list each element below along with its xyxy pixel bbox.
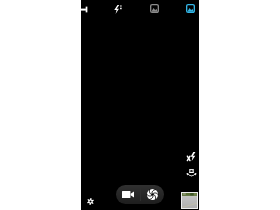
button[interactable]: Switch camera [184, 166, 199, 181]
button[interactable]: Take photo [141, 185, 164, 204]
button[interactable]: Gallery [183, 1, 198, 16]
button[interactable]: Last photo [182, 193, 197, 208]
button[interactable]: Record video [116, 185, 140, 204]
button[interactable]: Flash auto [110, 2, 125, 17]
button[interactable]: Flash off [184, 149, 199, 164]
button[interactable]: Settings [83, 194, 97, 208]
button[interactable]: Scene mode [147, 1, 162, 16]
button[interactable]: Timer [77, 2, 91, 16]
